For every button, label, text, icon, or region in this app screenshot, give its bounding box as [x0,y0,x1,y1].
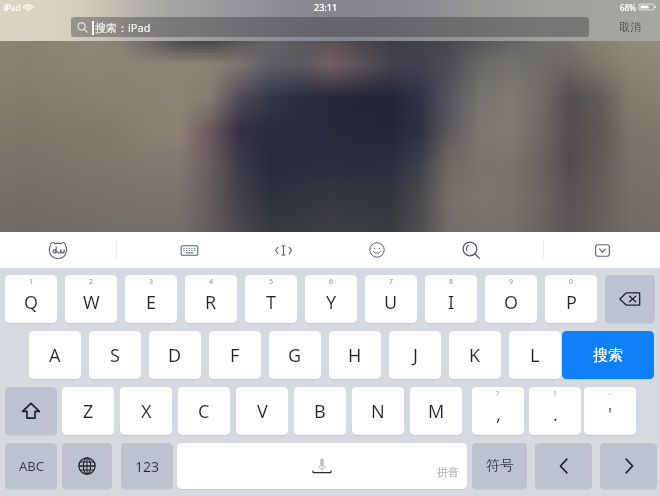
staticText: 0 [569,277,574,287]
staticText: Y [326,290,337,315]
staticText: H [348,343,362,368]
staticText: 2 [89,277,94,287]
button[interactable]: Z [62,387,114,435]
button[interactable]: Emoji [333,232,421,268]
staticText: , [496,402,501,427]
staticText: - [609,389,612,399]
staticText: 123 [135,457,160,476]
button[interactable]: 3 [125,275,177,323]
button[interactable]: Keyboard layout [145,232,233,268]
staticText: 4 [209,277,214,287]
staticText: 1 [29,277,34,287]
button[interactable]: M [410,387,462,435]
staticText: L [530,343,540,368]
button[interactable]: Hide keyboard [544,232,660,268]
staticText: V [257,399,268,424]
button[interactable]: D [149,331,201,379]
staticText: G [288,343,302,368]
staticText: Q [24,290,39,315]
button[interactable]: ! [529,387,581,435]
staticText: ABC [19,457,44,475]
button[interactable]: Switch keyboard [62,443,112,489]
button[interactable]: ABC [5,443,57,489]
button[interactable]: 5 [245,275,297,323]
staticText: D [168,343,182,368]
staticText: F [230,343,240,368]
button[interactable]: Next [600,443,657,489]
staticText: C [198,399,210,424]
staticText: ' [608,402,613,427]
button[interactable]: L [509,331,561,379]
button[interactable]: 搜索 [562,331,654,379]
staticText: A [49,343,61,368]
button[interactable]: F [209,331,261,379]
button[interactable]: 搜索：iPad [71,17,589,37]
button[interactable]: N [352,387,404,435]
button[interactable]: 8 [425,275,477,323]
staticText: M [428,399,445,424]
staticText: . [553,402,558,427]
staticText: N [371,399,385,424]
button[interactable]: Search [427,232,515,268]
button[interactable]: 9 [485,275,537,323]
button[interactable]: 取消 [612,17,648,37]
staticText: T [266,290,277,315]
staticText: B [314,399,326,424]
staticText: ! [554,389,556,399]
staticText: 取消 [619,20,641,34]
staticText: S [110,343,120,368]
staticText: K [469,343,481,368]
staticText: Z [83,399,94,424]
button[interactable]: V [236,387,288,435]
button[interactable]: 6 [305,275,357,323]
staticText: 68% [620,2,636,13]
staticText: 拼音 [437,465,459,479]
staticText: J [413,343,418,368]
button[interactable]: B [294,387,346,435]
staticText: 5 [269,277,274,287]
button[interactable]: Space [177,443,467,489]
button[interactable]: H [329,331,381,379]
button[interactable]: 7 [365,275,417,323]
button[interactable]: Backspace [605,275,655,323]
button[interactable]: C [178,387,230,435]
staticText: 23:11 [314,1,338,13]
staticText: E [146,290,157,315]
button[interactable]: - [584,387,636,435]
staticText: 3 [149,277,154,287]
button[interactable]: S [89,331,141,379]
staticText: 7 [389,277,394,287]
staticText: P [566,290,577,315]
staticText: 9 [509,277,514,287]
button[interactable]: 123 [121,443,173,489]
staticText: iPad [4,2,21,13]
button[interactable]: 2 [65,275,117,323]
button[interactable]: J [389,331,441,379]
button[interactable]: 4 [185,275,237,323]
button[interactable]: Baidu input [0,232,116,268]
staticText: 搜索 [593,346,623,365]
staticText: X [141,399,152,424]
button[interactable]: Move cursor [239,232,327,268]
button[interactable]: G [269,331,321,379]
staticText: R [205,290,217,315]
staticText: ? [496,389,500,399]
button[interactable]: 0 [545,275,597,323]
staticText: 8 [449,277,454,287]
button[interactable]: Previous [535,443,592,489]
staticText: I [448,290,455,315]
button[interactable]: X [120,387,172,435]
staticText: 符号 [486,457,514,475]
staticText: 搜索：iPad [95,20,151,35]
button[interactable]: Shift [5,387,57,435]
staticText: U [384,290,398,315]
button[interactable]: 1 [5,275,57,323]
staticText: 6 [329,277,334,287]
staticText: W [83,290,100,315]
button[interactable]: 符号 [472,443,527,489]
button[interactable]: K [449,331,501,379]
button[interactable]: A [29,331,81,379]
button[interactable]: ? [472,387,524,435]
staticText: O [504,290,519,315]
